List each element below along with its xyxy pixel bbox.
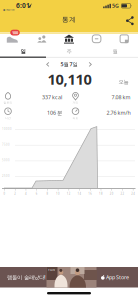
staticText: VLOG xyxy=(48,268,55,271)
staticText: 칼로리 xyxy=(3,101,12,104)
staticText: 거리 xyxy=(72,101,78,104)
staticText: 7500 xyxy=(2,143,10,146)
staticText: 22 xyxy=(120,192,124,195)
staticText: 5000 xyxy=(2,158,10,162)
staticText: 18 xyxy=(99,192,103,195)
staticText: 0 xyxy=(3,192,5,195)
button[interactable]: 주 xyxy=(46,46,92,56)
staticText: 5G xyxy=(112,2,119,9)
button[interactable]: 만보기 xyxy=(0,28,28,46)
button[interactable]: 채팅 xyxy=(84,32,110,46)
staticText: 10000 xyxy=(2,127,12,131)
button[interactable]: 다음 날짜 xyxy=(86,60,94,68)
staticText: 100 xyxy=(12,30,18,35)
staticText: ● NAVER xyxy=(3,8,15,11)
button[interactable]: 통계 xyxy=(56,32,82,46)
staticText: App Store xyxy=(106,274,129,281)
staticText: 월 xyxy=(112,48,117,55)
staticText: 6:01 xyxy=(16,1,30,10)
staticText: 2500 xyxy=(2,174,10,178)
staticText: 16 xyxy=(88,192,92,195)
staticText: 14 xyxy=(77,192,81,195)
staticText: 4 xyxy=(25,192,27,195)
staticText: 12 xyxy=(67,192,71,195)
staticText: 10 xyxy=(56,192,60,195)
staticText: 7.08 km xyxy=(111,94,130,101)
button[interactable]: 이전 날짜 xyxy=(44,60,52,68)
staticText: 2 xyxy=(14,192,16,195)
staticText: 오늘 xyxy=(118,79,128,85)
staticText: 속도 xyxy=(72,116,78,120)
button[interactable]: 기록 xyxy=(111,32,137,46)
staticText: 5월 7일 xyxy=(60,61,77,68)
button[interactable]: Share xyxy=(124,15,136,27)
staticText: 8 xyxy=(46,192,48,195)
staticText: 주 xyxy=(66,48,71,55)
staticText: 통계 xyxy=(62,15,76,24)
staticText: 2.76 km/h xyxy=(106,109,130,116)
button[interactable]: 친구 xyxy=(28,32,54,46)
staticText: 20 xyxy=(110,192,114,195)
staticText: 6 xyxy=(36,192,38,195)
staticText: 106 분 xyxy=(47,109,62,116)
staticText: 24 xyxy=(131,192,135,195)
staticText: 시간 xyxy=(5,116,11,120)
staticText: 10,110 xyxy=(47,69,91,89)
staticText: 램돌이 술래났다! xyxy=(7,274,45,281)
button[interactable]: 일 xyxy=(0,46,46,56)
staticText: 일 xyxy=(20,48,25,55)
button[interactable]: 월 xyxy=(92,46,138,56)
button[interactable]: 오늘 xyxy=(116,78,130,86)
staticText: 337 kcal xyxy=(42,94,62,101)
button[interactable]: 광고: App Store xyxy=(0,267,138,287)
